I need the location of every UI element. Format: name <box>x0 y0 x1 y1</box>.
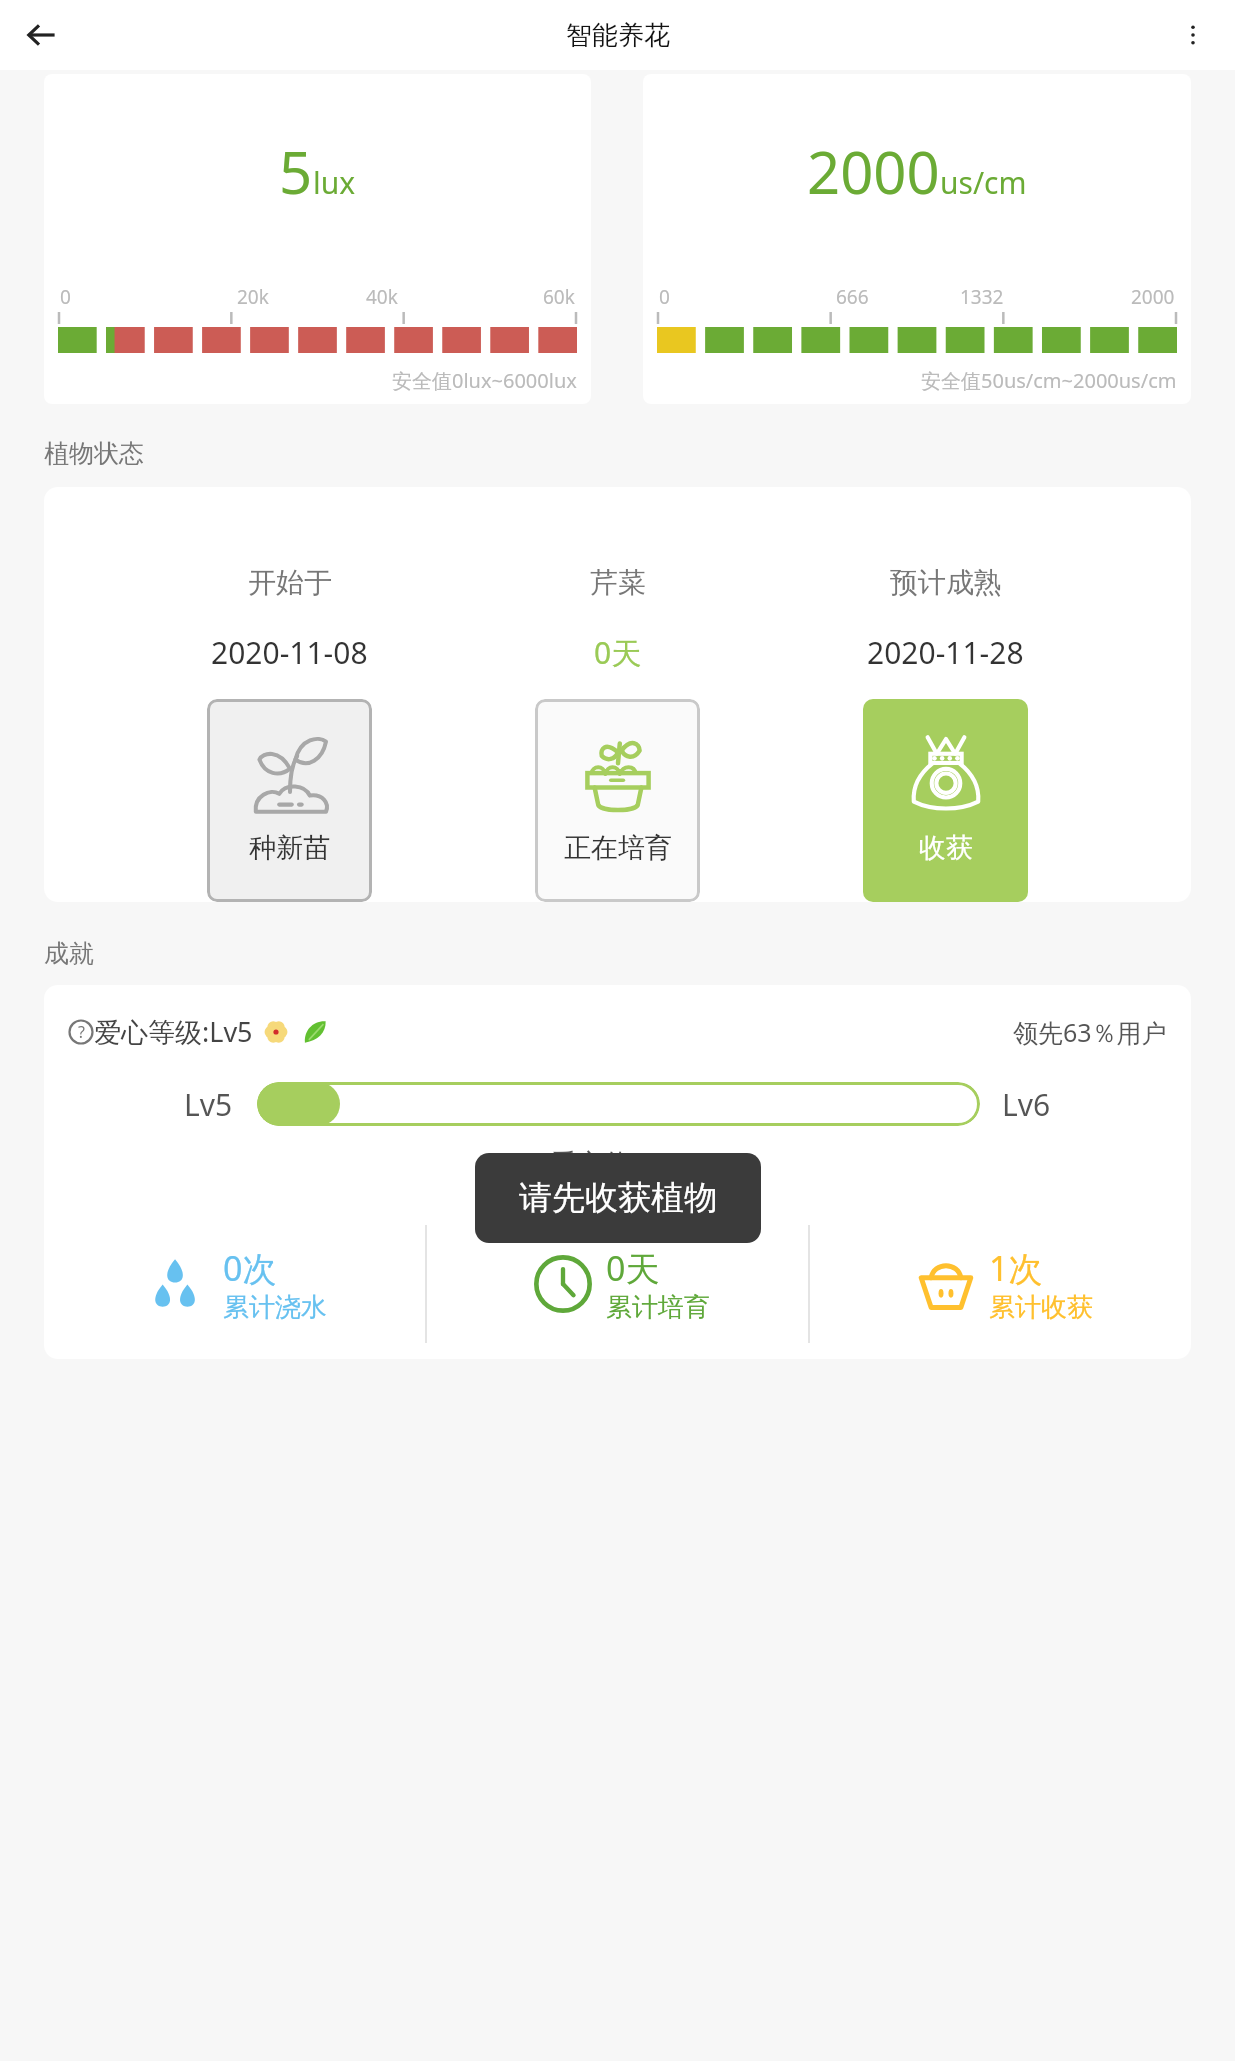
staticText: 666 <box>836 284 869 310</box>
staticText: 安全值50us/cm~2000us/cm <box>921 367 1177 394</box>
staticText: 芹菜 <box>590 565 646 600</box>
staticText: 安全值0lux~6000lux <box>392 367 577 394</box>
staticText: us/cm <box>940 162 1027 203</box>
staticText: 累计收获 <box>989 1291 1093 1324</box>
button[interactable]: Back <box>14 7 70 63</box>
button[interactable]: 种新苗 <box>207 699 372 902</box>
staticText: 开始于 <box>248 565 332 600</box>
staticText: 1次 <box>989 1245 1043 1291</box>
staticText: 2020-11-08 <box>211 632 368 673</box>
staticText: 领先63％用户 <box>1013 1015 1167 1049</box>
staticText: 5 <box>279 132 313 211</box>
staticText: ? <box>78 1021 85 1043</box>
button[interactable]: 0次 <box>44 1209 425 1359</box>
staticText: 成就 <box>44 938 94 969</box>
staticText: 收获 <box>919 831 973 865</box>
staticText: 0天 <box>594 632 642 673</box>
staticText: 正在培育 <box>564 831 672 865</box>
staticText: 累计培育 <box>606 1291 710 1324</box>
staticText: 2020-11-28 <box>867 632 1024 673</box>
staticText: 爱心等级:Lv5 <box>94 1013 253 1050</box>
staticText: 2000 <box>807 132 940 211</box>
button[interactable]: More options <box>1167 9 1219 61</box>
staticText: 0次 <box>223 1245 277 1291</box>
button[interactable]: 收获 <box>863 699 1028 902</box>
staticText: 60k <box>543 284 575 310</box>
staticText: 请先收获植物 <box>519 1177 717 1219</box>
staticText: 累计浇水 <box>223 1291 327 1324</box>
staticText: 40k <box>366 284 398 310</box>
button[interactable]: 1次 <box>810 1209 1191 1359</box>
staticText: 260 <box>639 1144 686 1181</box>
staticText: 预计成熟 <box>890 565 1002 600</box>
staticText: 爱心值: <box>550 1144 639 1181</box>
button[interactable]: 2000 <box>643 74 1191 404</box>
button[interactable]: Help <box>68 1019 94 1045</box>
staticText: 0天 <box>606 1245 660 1291</box>
staticText: 0 <box>659 284 670 310</box>
button[interactable]: 5 <box>44 74 591 404</box>
button[interactable]: 正在培育 <box>535 699 700 902</box>
staticText: 20k <box>237 284 269 310</box>
staticText: 种新苗 <box>249 831 330 865</box>
staticText: 2000 <box>1131 284 1175 310</box>
staticText: 植物状态 <box>44 438 144 469</box>
staticText: lux <box>313 162 356 203</box>
button[interactable]: 0天 <box>427 1209 808 1359</box>
staticText: 1332 <box>960 284 1004 310</box>
staticText: Lv6 <box>1002 1084 1051 1125</box>
staticText: Lv5 <box>184 1084 233 1125</box>
staticText: 0 <box>60 284 71 310</box>
staticText: 智能养花 <box>566 19 670 52</box>
